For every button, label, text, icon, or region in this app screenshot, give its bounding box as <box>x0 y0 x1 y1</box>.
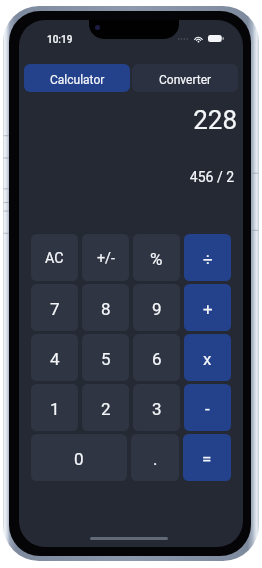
button[interactable]: 2 <box>82 384 129 431</box>
staticText: AC <box>45 250 64 267</box>
staticText: 1 <box>50 399 60 419</box>
staticText: + <box>203 299 213 319</box>
button[interactable]: = <box>183 434 231 481</box>
staticText: 8 <box>101 299 111 319</box>
staticText: Calculator <box>50 73 105 87</box>
staticText: +/- <box>97 250 115 267</box>
button[interactable]: 6 <box>133 334 180 381</box>
button[interactable]: ÷ <box>184 234 231 281</box>
button[interactable]: + <box>184 284 231 331</box>
staticText: ÷ <box>203 249 213 269</box>
staticText: 2 <box>101 399 111 419</box>
staticText: % <box>150 249 163 269</box>
staticText: 456 / 2 <box>19 169 234 185</box>
button[interactable]: 4 <box>31 334 78 381</box>
staticText: 4 <box>50 349 60 369</box>
staticText: 6 <box>152 349 162 369</box>
button[interactable]: 0 <box>31 434 127 481</box>
staticText: 3 <box>152 399 162 419</box>
button[interactable]: +/- <box>82 234 129 281</box>
button[interactable]: 5 <box>82 334 129 381</box>
button[interactable]: . <box>131 434 179 481</box>
staticText: x <box>203 349 212 369</box>
staticText: 9 <box>152 299 162 319</box>
staticText: 10:19 <box>47 34 73 46</box>
staticText: Converter <box>159 73 212 87</box>
button[interactable]: 8 <box>82 284 129 331</box>
button[interactable]: 1 <box>31 384 78 431</box>
staticText: 7 <box>50 299 60 319</box>
button[interactable]: AC <box>31 234 78 281</box>
staticText: - <box>205 399 210 419</box>
button[interactable]: % <box>133 234 180 281</box>
staticText: 228 <box>19 105 237 135</box>
button[interactable]: - <box>184 384 231 431</box>
staticText: = <box>202 449 212 469</box>
staticText: . <box>153 449 158 469</box>
button[interactable]: 3 <box>133 384 180 431</box>
button[interactable]: Calculator <box>24 64 130 92</box>
staticText: 0 <box>74 449 84 469</box>
button[interactable]: x <box>184 334 231 381</box>
staticText: 5 <box>101 349 111 369</box>
button[interactable]: 7 <box>31 284 78 331</box>
button[interactable]: Converter <box>132 64 238 92</box>
button[interactable]: 9 <box>133 284 180 331</box>
